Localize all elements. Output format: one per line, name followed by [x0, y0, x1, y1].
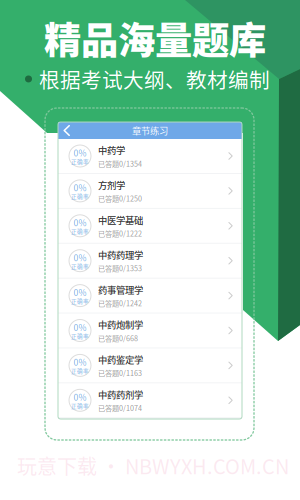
- button[interactable]: 0%: [58, 244, 242, 278]
- button[interactable]: 0%: [58, 139, 242, 173]
- staticText: 已答题0/1163: [98, 368, 142, 378]
- staticText: 玩意下载 · NBWYXH.COM.CN: [17, 451, 289, 480]
- staticText: 已答题0/1250: [98, 193, 142, 204]
- staticText: 0%: [73, 286, 86, 298]
- staticText: 0%: [73, 356, 86, 368]
- staticText: 精品海量题库: [44, 11, 266, 65]
- staticText: 正确率: [71, 157, 89, 166]
- button[interactable]: 0%: [58, 209, 242, 243]
- button[interactable]: 0%: [58, 279, 242, 313]
- staticText: 0%: [73, 146, 86, 159]
- staticText: 0%: [73, 181, 86, 194]
- button[interactable]: 0%: [58, 174, 242, 208]
- staticText: 中医学基础: [98, 213, 143, 227]
- staticText: 正确率: [71, 192, 89, 200]
- staticText: 0%: [73, 216, 86, 229]
- staticText: 已答题0/1354: [98, 158, 142, 169]
- staticText: 已答题0/1222: [98, 228, 142, 238]
- button[interactable]: 0%: [58, 313, 242, 347]
- staticText: 已答题0/1242: [98, 298, 142, 308]
- staticText: 正确率: [71, 332, 89, 340]
- staticText: 已答题0/1353: [98, 263, 142, 273]
- staticText: 正确率: [71, 297, 89, 305]
- staticText: 中药学: [98, 143, 125, 157]
- staticText: 根据考试大纲、教材编制: [39, 64, 270, 94]
- staticText: 正确率: [71, 402, 89, 410]
- staticText: 0%: [73, 321, 86, 333]
- staticText: 方剂学: [98, 178, 125, 192]
- staticText: 正确率: [71, 262, 89, 270]
- staticText: 中药药理学: [98, 248, 143, 261]
- button[interactable]: Back: [58, 122, 70, 139]
- staticText: 正确率: [71, 227, 89, 235]
- staticText: 正确率: [71, 367, 89, 375]
- staticText: 0%: [73, 391, 86, 403]
- staticText: 中药鉴定学: [98, 353, 143, 366]
- staticText: 已答题0/668: [98, 333, 138, 343]
- staticText: 中药药剂学: [98, 388, 143, 401]
- button[interactable]: 0%: [58, 348, 242, 382]
- button[interactable]: 0%: [58, 383, 242, 417]
- staticText: 0%: [73, 251, 86, 264]
- staticText: 已答题0/1074: [98, 403, 142, 413]
- staticText: 中药炮制学: [98, 318, 143, 331]
- staticText: 章节练习: [132, 124, 168, 137]
- staticText: 药事管理学: [98, 283, 143, 296]
